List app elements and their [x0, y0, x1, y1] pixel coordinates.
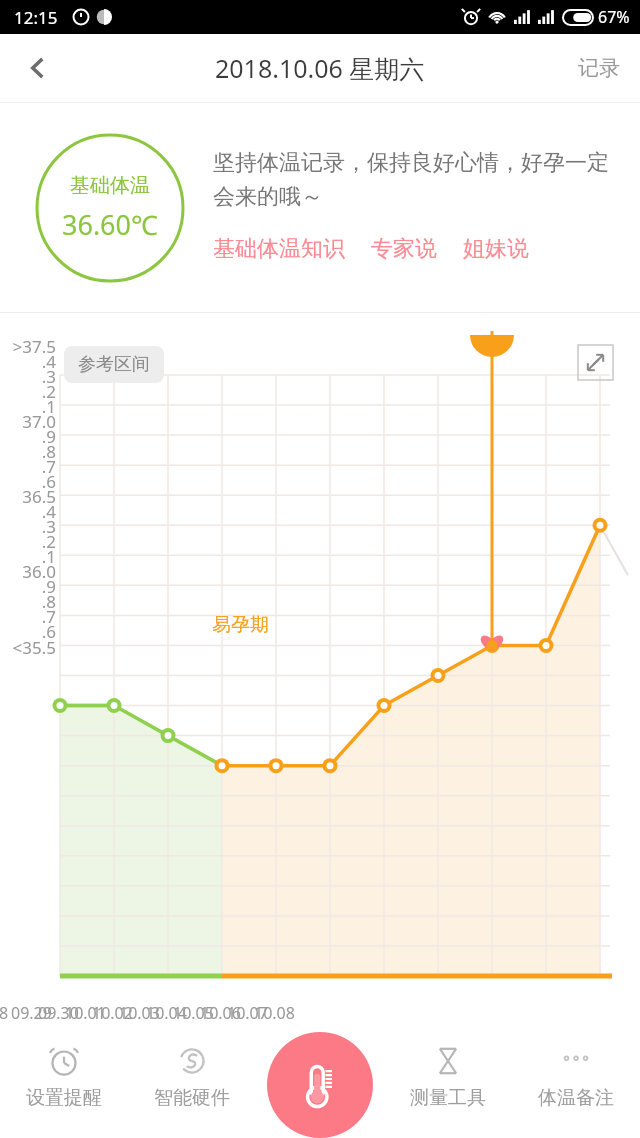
staticText: 基础体温知识 — [213, 235, 345, 263]
staticText: 易孕期 — [212, 613, 269, 637]
staticText: .6 — [0, 470, 56, 493]
button[interactable]: 记录 — [578, 55, 620, 81]
staticText: .7 — [0, 455, 56, 478]
button[interactable]: 设置提醒 — [0, 1030, 128, 1138]
button[interactable]: Expand chart — [578, 345, 613, 380]
button[interactable]: 基础体温 — [35, 133, 185, 283]
staticText: 10.06 — [200, 1002, 241, 1024]
staticText: 8 — [0, 1002, 9, 1024]
staticText: .2 — [0, 380, 56, 403]
staticText: 参考区间 — [78, 353, 150, 376]
staticText: .8 — [0, 440, 56, 463]
staticText: 10.04 — [146, 1002, 187, 1024]
staticText: 09.30 — [38, 1002, 79, 1024]
button[interactable]: 智能硬件 — [128, 1030, 256, 1138]
staticText: 67% — [598, 6, 630, 28]
staticText: .1 — [0, 545, 56, 568]
staticText: 2018.10.06 星期六 — [215, 51, 425, 85]
button[interactable]: Record temperature — [267, 1032, 373, 1138]
button[interactable]: 参考区间 — [64, 346, 164, 383]
staticText: .9 — [0, 575, 56, 598]
staticText: .7 — [0, 605, 56, 628]
staticText: 37.0 — [0, 410, 56, 433]
staticText: 测量工具 — [410, 1086, 486, 1110]
staticText: .3 — [0, 515, 56, 538]
button[interactable]: 体温备注 — [512, 1030, 640, 1138]
staticText: 基础体温 — [70, 173, 150, 198]
button[interactable]: Back — [12, 42, 64, 94]
staticText: 记录 — [578, 55, 620, 81]
staticText: 10.02 — [92, 1002, 133, 1024]
staticText: .6 — [0, 620, 56, 643]
staticText: >37.5 — [0, 335, 56, 358]
staticText: 姐妹说 — [463, 235, 529, 263]
staticText: 10.05 — [173, 1002, 214, 1024]
button[interactable]: 基础体温知识 — [213, 231, 345, 267]
staticText: .4 — [0, 500, 56, 523]
staticText: 设置提醒 — [26, 1086, 102, 1110]
staticText: 10.07 — [227, 1002, 268, 1024]
staticText: 10.03 — [119, 1002, 160, 1024]
button[interactable]: 专家说 — [371, 231, 437, 267]
staticText: 10.08 — [254, 1002, 295, 1024]
staticText: .4 — [0, 350, 56, 373]
button[interactable]: 姐妹说 — [463, 231, 529, 267]
staticText: <35.5 — [0, 636, 56, 659]
button[interactable]: 测量工具 — [384, 1030, 512, 1138]
staticText: 36.60℃ — [62, 206, 158, 243]
staticText: .9 — [0, 425, 56, 448]
staticText: 36.5 — [0, 485, 56, 508]
staticText: 体温备注 — [538, 1086, 614, 1110]
staticText: 12:15 — [14, 6, 58, 29]
staticText: .8 — [0, 590, 56, 613]
staticText: .3 — [0, 365, 56, 388]
staticText: 坚持体温记录，保持良好心情，好孕一定会来的哦～ — [213, 149, 628, 211]
staticText: .1 — [0, 395, 56, 418]
staticText: 智能硬件 — [154, 1086, 230, 1110]
staticText: 10.01 — [65, 1002, 106, 1024]
staticText: .2 — [0, 530, 56, 553]
staticText: 36.0 — [0, 560, 56, 583]
staticText: 09.29 — [11, 1002, 52, 1024]
staticText: 专家说 — [371, 235, 437, 263]
